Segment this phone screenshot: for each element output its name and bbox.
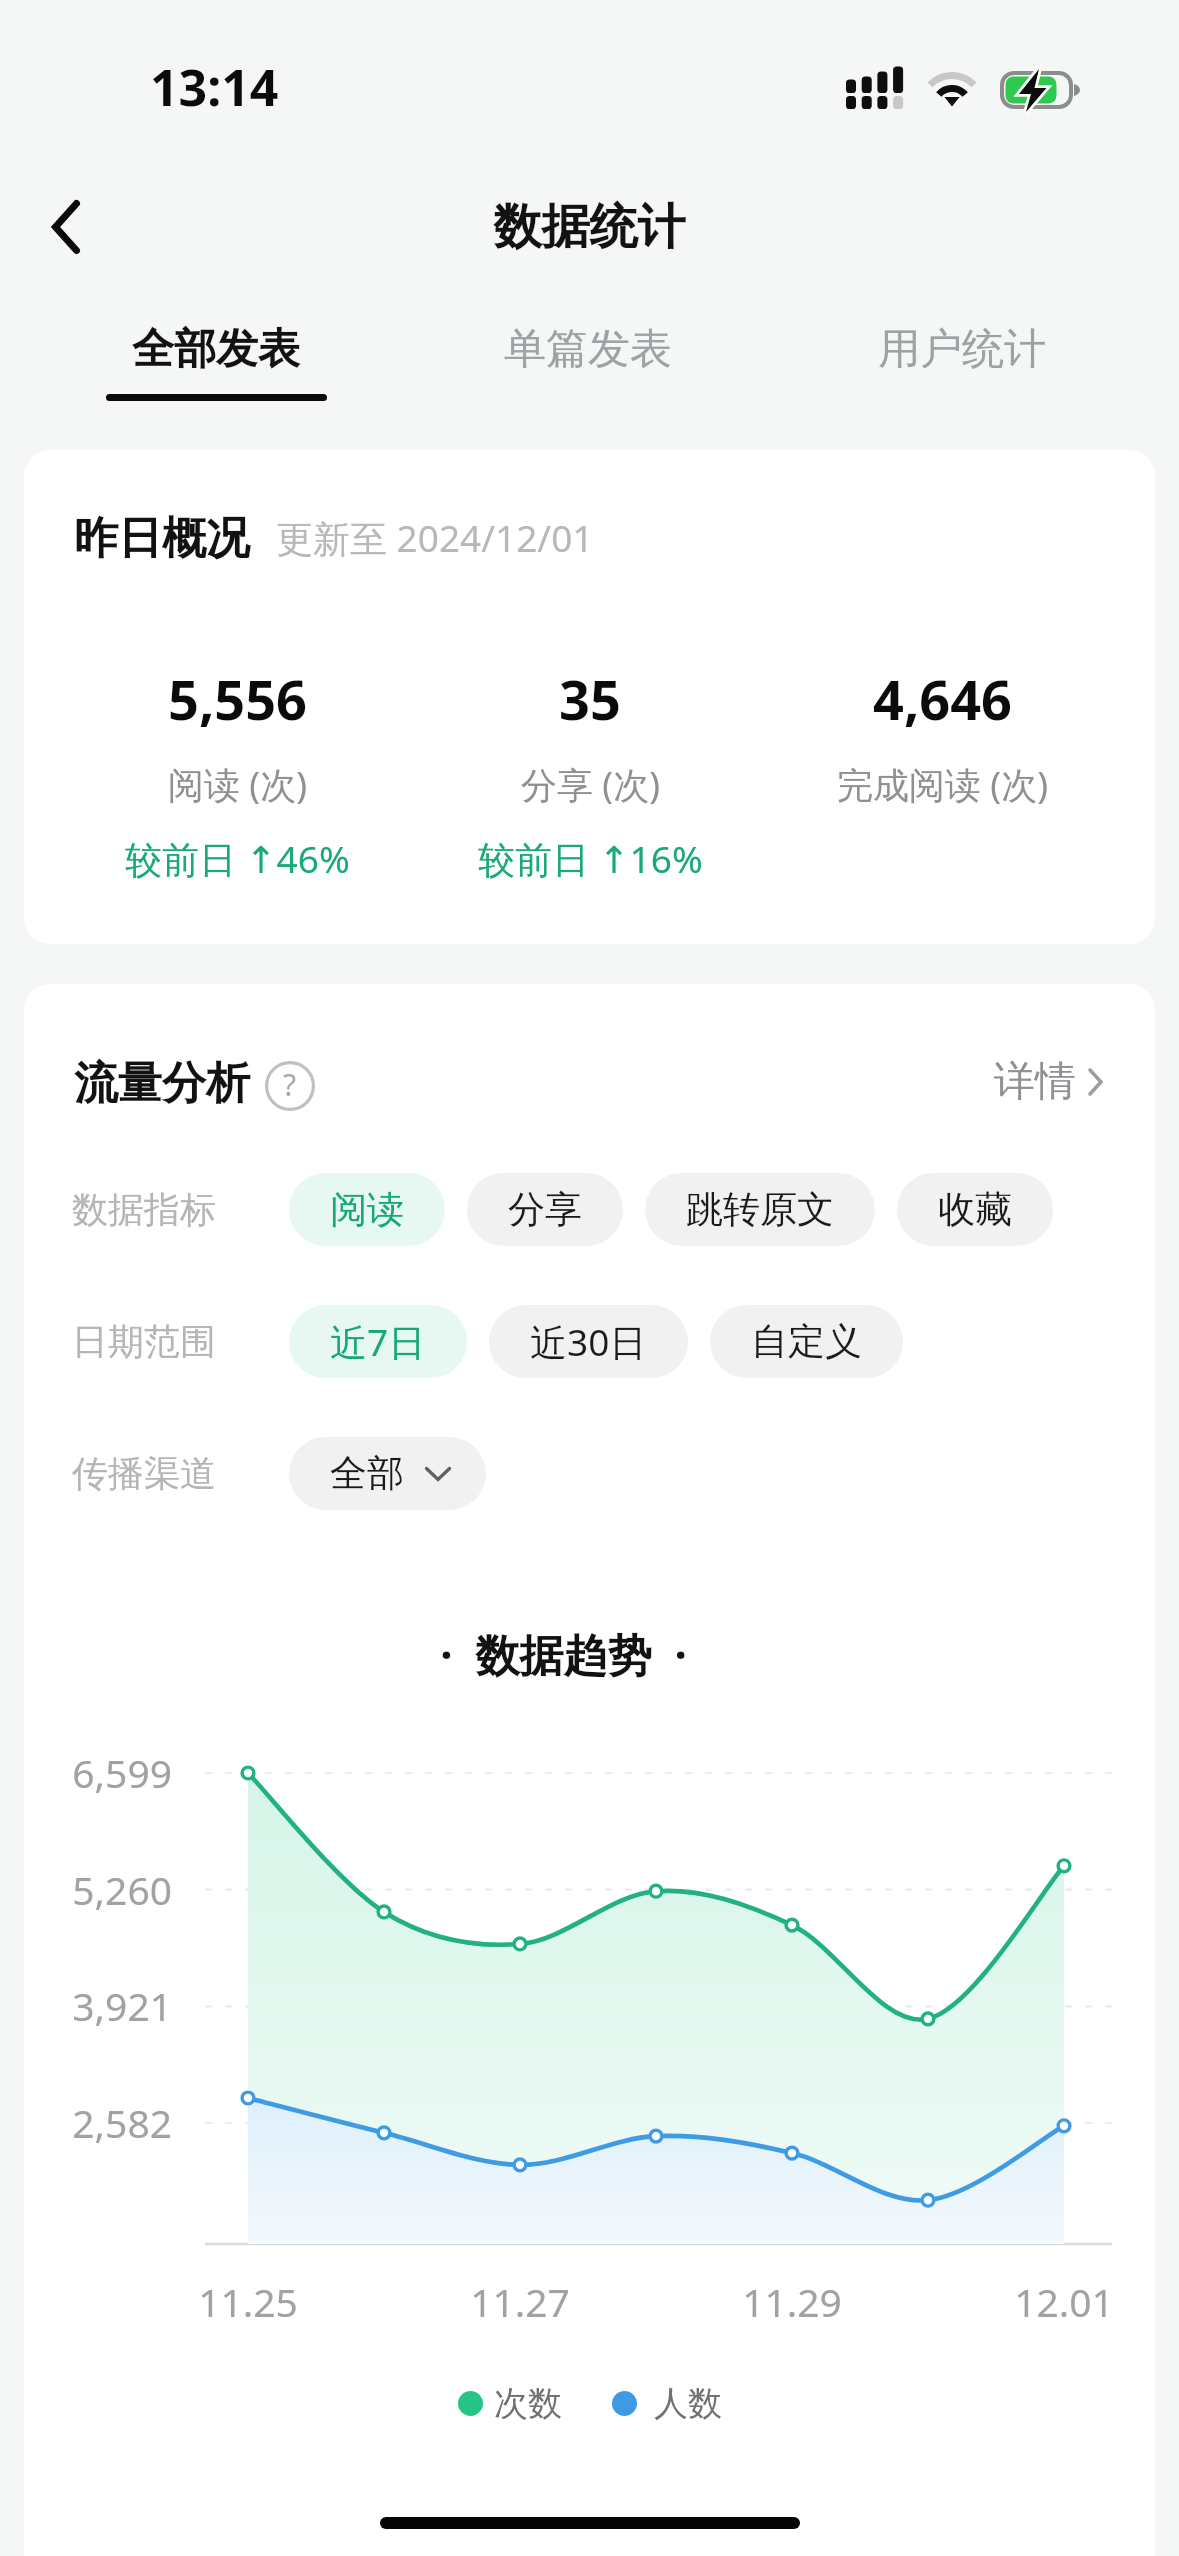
staticText: · 数据趋势 · [24, 1624, 1129, 1684]
staticText: 11.25 [178, 2275, 318, 2328]
staticText: 传播渠道 [72, 1451, 216, 1496]
button[interactable]: Help [265, 1061, 315, 1111]
staticText: 昨日概况 [74, 511, 250, 566]
staticText: 人数 [654, 2382, 722, 2425]
button[interactable]: 全部发表 [71, 323, 361, 401]
staticText: 近30日 [530, 1316, 647, 1367]
staticText: 日期范围 [72, 1319, 216, 1364]
button[interactable]: 单篇发表 [443, 323, 733, 401]
staticText: 全部 [330, 1450, 404, 1497]
button[interactable]: 收藏 [897, 1173, 1053, 1246]
staticText: 阅读 (次) [168, 760, 307, 809]
staticText: 单篇发表 [443, 323, 733, 376]
staticText: 次数 [494, 2382, 562, 2425]
button[interactable]: 分享 [467, 1173, 623, 1246]
staticText: 4,646 [873, 662, 1012, 736]
staticText: 较前日 ↑46% [125, 833, 350, 884]
staticText: 6,599 [24, 1746, 172, 1799]
staticText: 11.29 [722, 2275, 862, 2328]
staticText: 11.27 [450, 2275, 590, 2328]
staticText: 12.01 [994, 2275, 1134, 2328]
button[interactable]: 阅读 [289, 1173, 445, 1246]
staticText: 较前日 ↑16% [478, 833, 703, 884]
button[interactable]: 全部 [289, 1437, 486, 1510]
button[interactable]: 近7日 [289, 1305, 467, 1378]
staticText: 5,260 [24, 1863, 172, 1916]
staticText: ? [283, 1064, 297, 1105]
button[interactable]: 详情 [994, 1056, 1103, 1108]
button[interactable]: 用户统计 [817, 323, 1107, 401]
staticText: 2,582 [24, 2096, 172, 2149]
staticText: 收藏 [938, 1186, 1012, 1233]
staticText: 近7日 [330, 1316, 426, 1367]
staticText: 数据统计 [0, 197, 1179, 257]
button[interactable]: 近30日 [489, 1305, 688, 1378]
staticText: 完成阅读 (次) [837, 760, 1048, 809]
staticText: 自定义 [751, 1318, 862, 1365]
staticText: 分享 (次) [521, 760, 660, 809]
staticText: 更新至 2024/12/01 [276, 512, 594, 563]
staticText: 5,556 [168, 662, 307, 736]
button[interactable]: Back [16, 177, 116, 277]
staticText: 35 [559, 662, 621, 736]
staticText: 跳转原文 [686, 1186, 834, 1233]
button[interactable]: 自定义 [710, 1305, 903, 1378]
staticText: 分享 [508, 1186, 582, 1233]
staticText: 阅读 [330, 1186, 404, 1233]
staticText: 流量分析 [74, 1056, 250, 1111]
staticText: 全部发表 [71, 323, 361, 376]
staticText: 数据指标 [72, 1187, 216, 1232]
staticText: 3,921 [24, 1979, 172, 2032]
staticText: 13:14 [150, 53, 279, 121]
staticText: 用户统计 [817, 323, 1107, 376]
staticText: 详情 [994, 1056, 1076, 1108]
button[interactable]: 跳转原文 [645, 1173, 875, 1246]
